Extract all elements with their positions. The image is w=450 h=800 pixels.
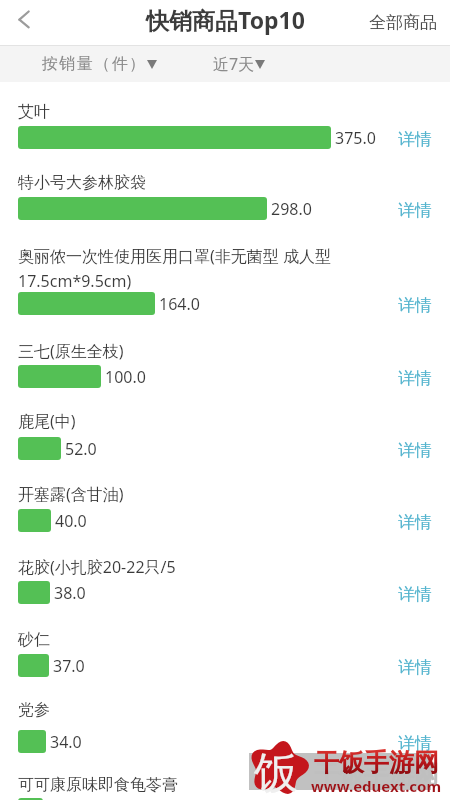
staticText: www.eduext.com: [311, 776, 442, 796]
staticText: 详情: [398, 512, 432, 533]
staticText: 详情: [398, 129, 432, 150]
staticText: 花胶(小扎胶20-22只/5: [18, 556, 176, 578]
button[interactable]: 详情: [398, 368, 432, 389]
staticText: 164.0: [159, 293, 200, 315]
staticText: 全部商品: [369, 12, 437, 33]
button[interactable]: 详情: [398, 440, 432, 461]
staticText: 三七(原生全枝): [18, 340, 124, 362]
button[interactable]: 按销量（件）: [41, 54, 157, 74]
staticText: 艾叶: [18, 102, 50, 122]
button[interactable]: 详情: [398, 733, 432, 754]
staticText: 详情: [398, 733, 432, 754]
button[interactable]: 详情: [398, 584, 432, 605]
staticText: 干饭手游网: [314, 747, 439, 778]
staticText: 党参: [18, 700, 50, 720]
staticText: 40.0: [55, 510, 87, 532]
button[interactable]: 详情: [398, 512, 432, 533]
staticText: 详情: [398, 295, 432, 316]
staticText: 饭: [254, 746, 298, 800]
button[interactable]: 详情: [398, 295, 432, 316]
staticText: 详情: [398, 200, 432, 221]
staticText: 详情: [398, 440, 432, 461]
staticText: 37.0: [53, 655, 85, 677]
staticText: 38.0: [54, 582, 86, 604]
staticText: 按销量（件）: [41, 54, 146, 74]
staticText: 开塞露(含甘油): [18, 483, 124, 505]
button[interactable]: 全部商品: [369, 12, 437, 33]
staticText: 详情: [398, 368, 432, 389]
staticText: 近7天: [213, 53, 255, 75]
staticText: 52.0: [65, 438, 97, 460]
button[interactable]: 详情: [398, 200, 432, 221]
staticText: 鹿尾(中): [18, 410, 76, 432]
staticText: 详情: [398, 584, 432, 605]
staticText: 可可康原味即食龟苓膏: [18, 775, 178, 795]
staticText: 详情: [398, 657, 432, 678]
staticText: 特小号大参林胶袋: [18, 173, 146, 193]
button[interactable]: 详情: [398, 129, 432, 150]
button[interactable]: 详情: [398, 657, 432, 678]
staticText: 快销商品Top10: [146, 4, 305, 35]
staticText: 100.0: [105, 366, 146, 388]
button[interactable]: 近7天: [213, 53, 265, 75]
staticText: 砂仁: [18, 630, 50, 650]
staticText: 奥丽侬一次性使用医用口罩(非无菌型 成人型 17.5cm*9.5cm): [18, 245, 364, 292]
staticText: 298.0: [271, 198, 312, 220]
button[interactable]: 返回: [0, 0, 46, 40]
staticText: 干饭手游网: [314, 759, 439, 790]
staticText: 34.0: [50, 731, 82, 753]
staticText: 375.0: [335, 127, 376, 149]
